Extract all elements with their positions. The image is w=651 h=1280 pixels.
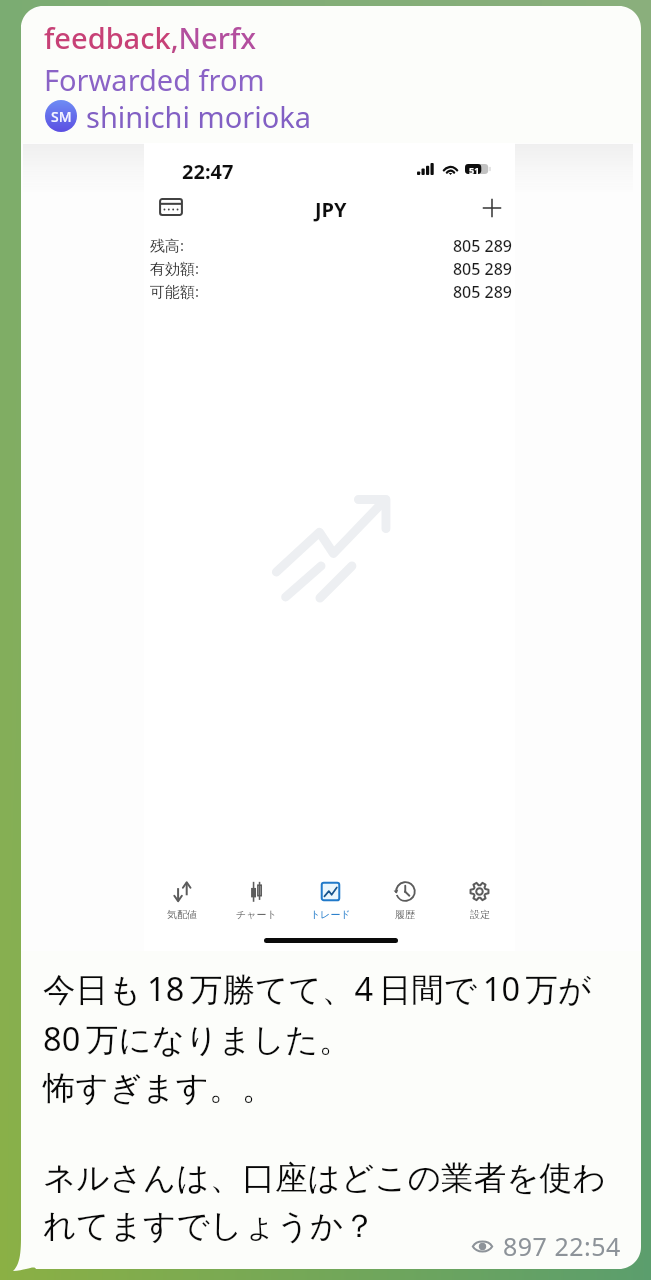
- staticText: feedback,Nerfx: [44, 18, 257, 57]
- button[interactable]: Add: [478, 194, 506, 222]
- staticText: 805 289: [380, 235, 512, 257]
- staticText: チャート: [236, 908, 277, 921]
- button[interactable]: shinichi morioka avatar: [45, 100, 77, 132]
- staticText: トレード: [310, 908, 351, 921]
- staticText: 気配値: [167, 908, 197, 921]
- staticText: 22:47: [182, 158, 234, 185]
- button[interactable]: 履歴: [367, 881, 441, 933]
- button[interactable]: 設定: [442, 881, 516, 933]
- staticText: Forwarded from: [44, 60, 265, 99]
- staticText: 805 289: [380, 258, 512, 280]
- button[interactable]: トレード: [293, 881, 367, 933]
- staticText: 可能額:: [150, 281, 200, 301]
- staticText: 残高:: [150, 235, 185, 255]
- staticText: shinichi morioka: [86, 97, 311, 136]
- staticText: 805 289: [380, 281, 512, 303]
- staticText: JPY: [315, 196, 347, 223]
- staticText: 51: [469, 164, 480, 174]
- button[interactable]: チャート: [219, 881, 293, 933]
- button[interactable]: Accounts: [157, 195, 185, 219]
- staticText: ネルさんは、口座はどこの業者を使わ れてますでしょうか？: [43, 1158, 606, 1246]
- staticText: 897 22:54: [503, 1229, 621, 1263]
- button[interactable]: 気配値: [145, 881, 219, 933]
- staticText: 有効額:: [150, 258, 200, 278]
- staticText: SM: [51, 107, 72, 126]
- staticText: 設定: [470, 908, 490, 921]
- staticText: 今日も 18 万勝てて、4 日間で 10 万が 80 万になりました。 怖すぎま…: [43, 966, 592, 1108]
- staticText: 履歴: [395, 908, 415, 921]
